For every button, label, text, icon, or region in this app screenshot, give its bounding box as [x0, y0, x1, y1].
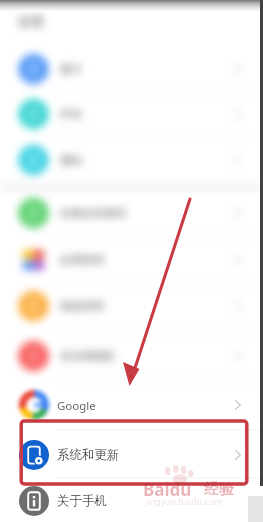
staticText: 经验 [204, 480, 234, 499]
staticText: 设置 [18, 13, 44, 29]
staticText: 应用管理 [60, 253, 104, 267]
staticText: 电池管理 [60, 299, 104, 313]
staticText: 系统和更新 [57, 447, 120, 463]
staticText: 声音 [60, 107, 82, 121]
staticText: 通知 [60, 153, 82, 167]
staticText: Baidu [143, 478, 192, 501]
button[interactable]: Google [0, 382, 263, 429]
button[interactable]: 系统和更新 [0, 432, 263, 479]
staticText: 关于手机 [57, 493, 107, 509]
staticText: 生物识别密码 [60, 206, 126, 220]
staticText: 显示 [60, 62, 82, 76]
button[interactable]: 关于手机 [0, 479, 263, 522]
staticText: jingyan.baidu.com [145, 495, 223, 507]
staticText: Google [57, 398, 96, 414]
staticText: 安全和隐私 [60, 349, 115, 363]
